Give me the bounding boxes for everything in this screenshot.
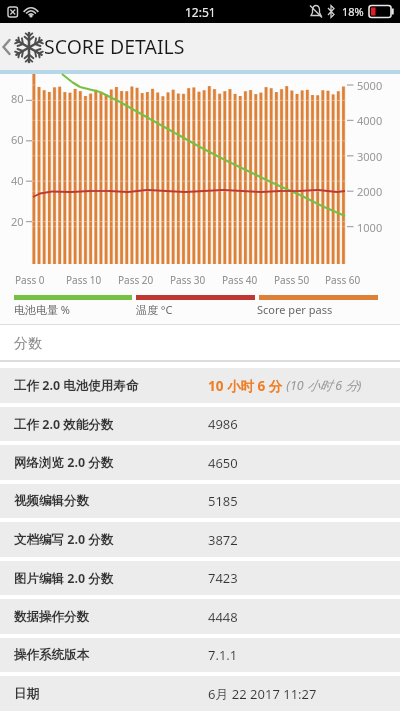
staticText: 5185 — [208, 492, 238, 510]
button[interactable]: 数据操作分数 — [0, 599, 400, 634]
staticText: (10 小时 6 分) — [283, 377, 362, 394]
button[interactable]: 图片编辑 2.0 分数 — [0, 561, 400, 595]
staticText: SCORE DETAILS — [44, 33, 185, 60]
staticText: 数据操作分数 — [14, 609, 208, 625]
staticText: 日期 — [14, 686, 208, 702]
staticText: 4986 — [208, 415, 238, 433]
button[interactable]: SCORE DETAILS — [0, 23, 400, 70]
staticText: 图片编辑 2.0 分数 — [14, 570, 208, 587]
button[interactable]: 工作 2.0 电池使用寿命 — [0, 368, 400, 403]
staticText: 18% — [342, 4, 364, 19]
staticText: Pass 50 — [274, 273, 310, 287]
staticText: 7.1.1 — [208, 646, 238, 664]
staticText: 10 小时 6 分 — [208, 377, 283, 395]
staticText: Pass 30 — [170, 273, 206, 287]
staticText: 12:51 — [185, 4, 216, 20]
staticText: 4448 — [208, 608, 238, 626]
staticText: 工作 2.0 效能分数 — [14, 416, 208, 433]
staticText: Pass 20 — [118, 273, 154, 287]
staticText: 电池电量 % — [14, 302, 136, 317]
staticText: 6月 22 2017 11:27 — [208, 685, 317, 703]
staticText: 分数 — [14, 335, 42, 353]
staticText: 1000 — [357, 220, 383, 235]
staticText: 4650 — [208, 454, 238, 472]
staticText: 20 — [11, 214, 24, 229]
staticText: 网络浏览 2.0 分数 — [14, 454, 208, 471]
staticText: 60 — [11, 132, 24, 147]
staticText: 7423 — [208, 569, 238, 587]
staticText: Score per pass — [257, 302, 378, 317]
button[interactable]: 日期 — [0, 676, 400, 711]
staticText: 操作系统版本 — [14, 647, 208, 663]
staticText: 3872 — [208, 531, 238, 549]
staticText: Pass 10 — [66, 273, 102, 287]
staticText: Pass 60 — [325, 273, 361, 287]
staticText: Pass 0 — [15, 273, 45, 287]
button[interactable]: 视频编辑分数 — [0, 484, 400, 518]
staticText: 5000 — [357, 78, 383, 93]
staticText: 工作 2.0 电池使用寿命 — [14, 377, 208, 394]
staticText: Pass 40 — [222, 273, 258, 287]
button[interactable]: 文档编写 2.0 分数 — [0, 522, 400, 557]
staticText: 温度 °C — [136, 302, 257, 317]
staticText: 40 — [11, 173, 24, 188]
button[interactable]: 工作 2.0 效能分数 — [0, 407, 400, 441]
staticText: 文档编写 2.0 分数 — [14, 531, 208, 548]
staticText: 4000 — [357, 113, 383, 128]
staticText: 视频编辑分数 — [14, 493, 208, 509]
staticText: 80 — [11, 91, 24, 106]
button[interactable]: 操作系统版本 — [0, 638, 400, 672]
staticText: 2000 — [357, 184, 383, 199]
staticText: 3000 — [357, 149, 383, 164]
button[interactable]: 网络浏览 2.0 分数 — [0, 445, 400, 480]
